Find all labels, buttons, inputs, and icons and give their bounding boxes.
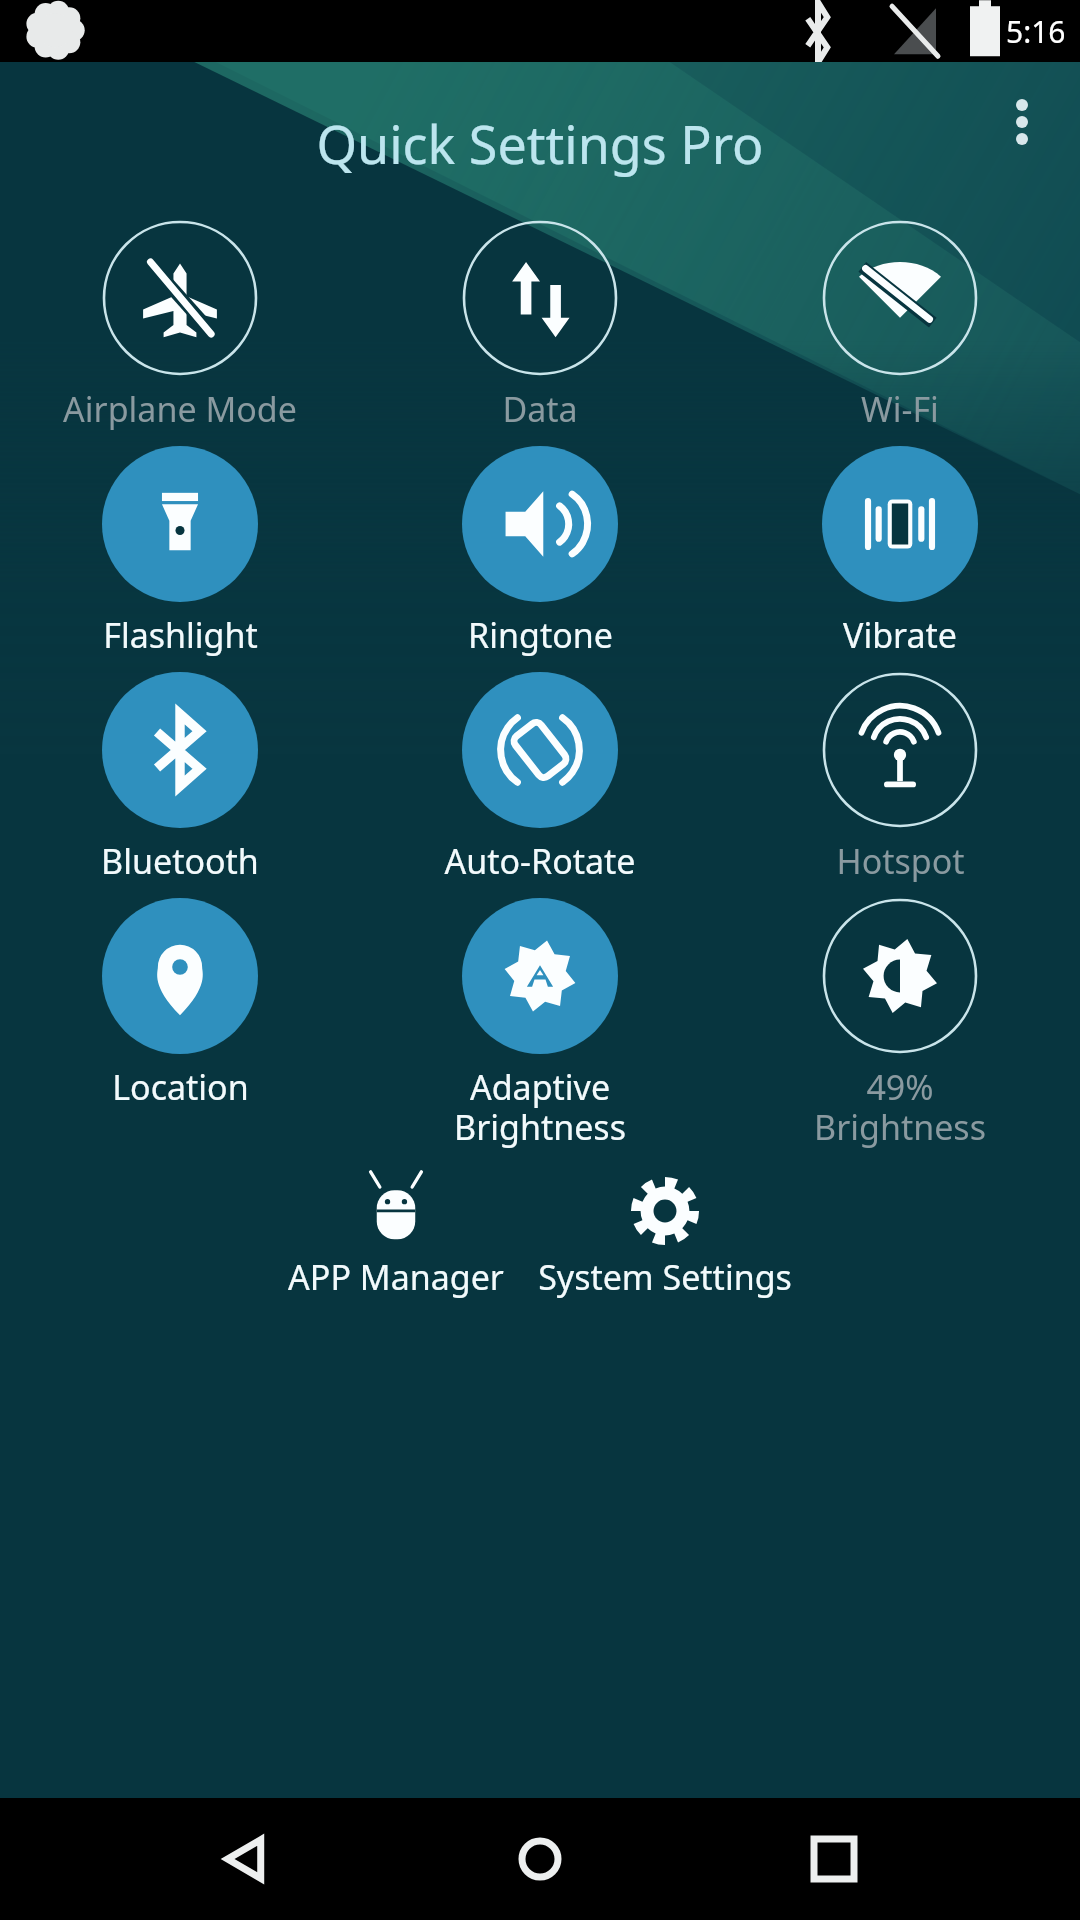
staticText: Bluetooth (101, 838, 259, 884)
button[interactable]: Location (0, 890, 360, 1116)
staticText: Adaptive Brightness (454, 1064, 626, 1150)
button[interactable]: Flashlight (0, 438, 360, 664)
staticText: Location (112, 1064, 249, 1110)
staticText: Data (502, 386, 578, 432)
staticText: Auto-Rotate (444, 838, 636, 884)
button[interactable]: Airplane Mode (0, 212, 360, 438)
button[interactable]: Back (198, 1811, 294, 1907)
button[interactable]: Ringtone (360, 438, 720, 664)
staticText: Wi-Fi (861, 386, 939, 432)
button[interactable]: More options (982, 82, 1062, 162)
button[interactable]: Data (360, 212, 720, 438)
button[interactable]: Recents (786, 1811, 882, 1907)
staticText: Vibrate (843, 612, 957, 658)
button[interactable]: 49% Brightness (720, 890, 1080, 1156)
staticText: System Settings (538, 1254, 792, 1300)
button[interactable]: System Settings (528, 1170, 802, 1304)
staticText: Quick Settings Pro (316, 108, 764, 179)
staticText: APP Manager (288, 1254, 504, 1300)
staticText: Ringtone (468, 612, 613, 658)
staticText: Hotspot (836, 838, 965, 884)
staticText: Flashlight (103, 612, 258, 658)
button[interactable]: Home (492, 1811, 588, 1907)
button[interactable]: Adaptive Brightness (360, 890, 720, 1156)
button[interactable]: Bluetooth (0, 664, 360, 890)
button[interactable]: Auto-Rotate (360, 664, 720, 890)
staticText: 5:16 (1006, 11, 1066, 52)
button[interactable]: Wi-Fi (720, 212, 1080, 438)
button[interactable]: Vibrate (720, 438, 1080, 664)
button[interactable]: Hotspot (720, 664, 1080, 890)
staticText: Airplane Mode (63, 386, 297, 432)
staticText: 49% Brightness (814, 1064, 986, 1150)
button[interactable]: APP Manager (278, 1170, 514, 1304)
